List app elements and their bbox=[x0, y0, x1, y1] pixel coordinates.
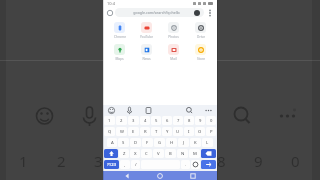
staticText: 5 bbox=[155, 118, 158, 124]
button[interactable]: P bbox=[206, 127, 216, 136]
staticText: V bbox=[157, 151, 160, 157]
button[interactable]: ?123 bbox=[104, 160, 119, 169]
staticText: 1 bbox=[19, 151, 28, 171]
button[interactable]: Maps bbox=[106, 42, 133, 63]
button[interactable]: 9 bbox=[195, 116, 205, 125]
button[interactable]: Shift bbox=[104, 149, 118, 158]
button[interactable]: R bbox=[140, 127, 150, 136]
staticText: 6 bbox=[166, 118, 169, 124]
button[interactable]: . bbox=[181, 160, 190, 169]
staticText: 10:4 bbox=[107, 1, 115, 6]
button[interactable]: Account bbox=[194, 10, 200, 16]
staticText: Maps bbox=[115, 57, 124, 61]
button[interactable]: Mail bbox=[160, 42, 187, 63]
button[interactable]: Voice input bbox=[125, 106, 134, 115]
staticText: U bbox=[176, 129, 180, 135]
staticText: 9 bbox=[254, 151, 263, 171]
staticText: 8 bbox=[217, 151, 226, 171]
button[interactable]: Search bbox=[185, 106, 194, 115]
button[interactable]: E bbox=[128, 127, 139, 136]
staticText: H bbox=[170, 140, 174, 146]
button[interactable]: Home bbox=[151, 171, 169, 180]
staticText: B bbox=[169, 151, 172, 157]
staticText: Photos bbox=[168, 35, 179, 39]
button[interactable]: I bbox=[184, 127, 194, 136]
button[interactable]: YouTube bbox=[133, 20, 160, 41]
button[interactable]: X bbox=[130, 149, 140, 158]
button[interactable]: google.com/search?q=hello bbox=[115, 8, 204, 17]
staticText: A bbox=[111, 140, 114, 146]
staticText: . bbox=[185, 162, 187, 168]
staticText: Z bbox=[123, 151, 126, 157]
staticText: I bbox=[188, 129, 190, 135]
staticText: P bbox=[210, 129, 213, 135]
staticText: T bbox=[155, 129, 158, 135]
button[interactable]: O bbox=[195, 127, 205, 136]
staticText: F bbox=[146, 140, 149, 146]
button[interactable]: D bbox=[130, 138, 141, 147]
button[interactable]: , bbox=[120, 160, 130, 169]
button[interactable]: 1 bbox=[104, 116, 115, 125]
button[interactable]: S bbox=[118, 138, 129, 147]
button[interactable]: N bbox=[177, 149, 188, 158]
staticText: C bbox=[145, 151, 148, 157]
staticText: Q bbox=[108, 129, 112, 135]
button[interactable]: J bbox=[178, 138, 189, 147]
staticText: News bbox=[142, 57, 151, 61]
button[interactable]: W bbox=[116, 127, 127, 136]
button[interactable]: 6 bbox=[162, 116, 172, 125]
button[interactable]: Enter bbox=[201, 160, 216, 169]
button[interactable]: G bbox=[154, 138, 165, 147]
staticText: G bbox=[158, 140, 162, 146]
button[interactable]: T bbox=[151, 127, 161, 136]
button[interactable]: More bbox=[204, 106, 213, 115]
button[interactable]: B bbox=[165, 149, 176, 158]
staticText: X bbox=[134, 151, 137, 157]
button[interactable]: M bbox=[189, 149, 200, 158]
button[interactable]: Z bbox=[119, 149, 129, 158]
button[interactable]: Store bbox=[187, 42, 214, 63]
button[interactable]: 5 bbox=[151, 116, 161, 125]
button[interactable]: Y bbox=[162, 127, 172, 136]
staticText: 7 bbox=[177, 118, 180, 124]
button[interactable]: C bbox=[141, 149, 152, 158]
staticText: Chrome bbox=[114, 35, 126, 39]
button[interactable]: News bbox=[133, 42, 160, 63]
button[interactable]: More options bbox=[206, 9, 214, 17]
button[interactable]: Emoji keyboard bbox=[191, 160, 200, 169]
button[interactable]: Photos bbox=[160, 20, 187, 41]
button[interactable]: L bbox=[202, 138, 213, 147]
button[interactable]: V bbox=[153, 149, 164, 158]
button[interactable]: 0 bbox=[206, 116, 216, 125]
button[interactable]: Back bbox=[118, 171, 136, 180]
staticText: 0 bbox=[210, 118, 213, 124]
staticText: / bbox=[135, 162, 137, 168]
button[interactable]: H bbox=[166, 138, 177, 147]
button[interactable]: Reload bbox=[106, 9, 114, 17]
button[interactable]: Recents bbox=[184, 171, 202, 180]
staticText: 3 bbox=[132, 118, 135, 124]
button[interactable]: Emoji bbox=[107, 106, 116, 115]
button[interactable]: 2 bbox=[116, 116, 127, 125]
button[interactable]: 7 bbox=[173, 116, 183, 125]
button[interactable]: Q bbox=[104, 127, 115, 136]
button[interactable]: 4 bbox=[140, 116, 150, 125]
button[interactable]: Backspace bbox=[201, 149, 216, 158]
staticText: O bbox=[198, 129, 202, 135]
button[interactable]: U bbox=[173, 127, 183, 136]
button[interactable]: 8 bbox=[184, 116, 194, 125]
button[interactable]: 3 bbox=[128, 116, 139, 125]
button[interactable]: K bbox=[190, 138, 201, 147]
staticText: , bbox=[124, 162, 126, 168]
button[interactable]: / bbox=[131, 160, 140, 169]
staticText: D bbox=[134, 140, 138, 146]
button[interactable]: A bbox=[107, 138, 117, 147]
button[interactable]: Chrome bbox=[106, 20, 133, 41]
staticText: Store bbox=[197, 57, 205, 61]
button[interactable]: Clipboard bbox=[144, 106, 153, 115]
button[interactable]: Drive bbox=[187, 20, 214, 41]
staticText: google.com/search?q=hello bbox=[119, 10, 194, 15]
staticText: M bbox=[193, 151, 197, 157]
button[interactable]: F bbox=[142, 138, 153, 147]
